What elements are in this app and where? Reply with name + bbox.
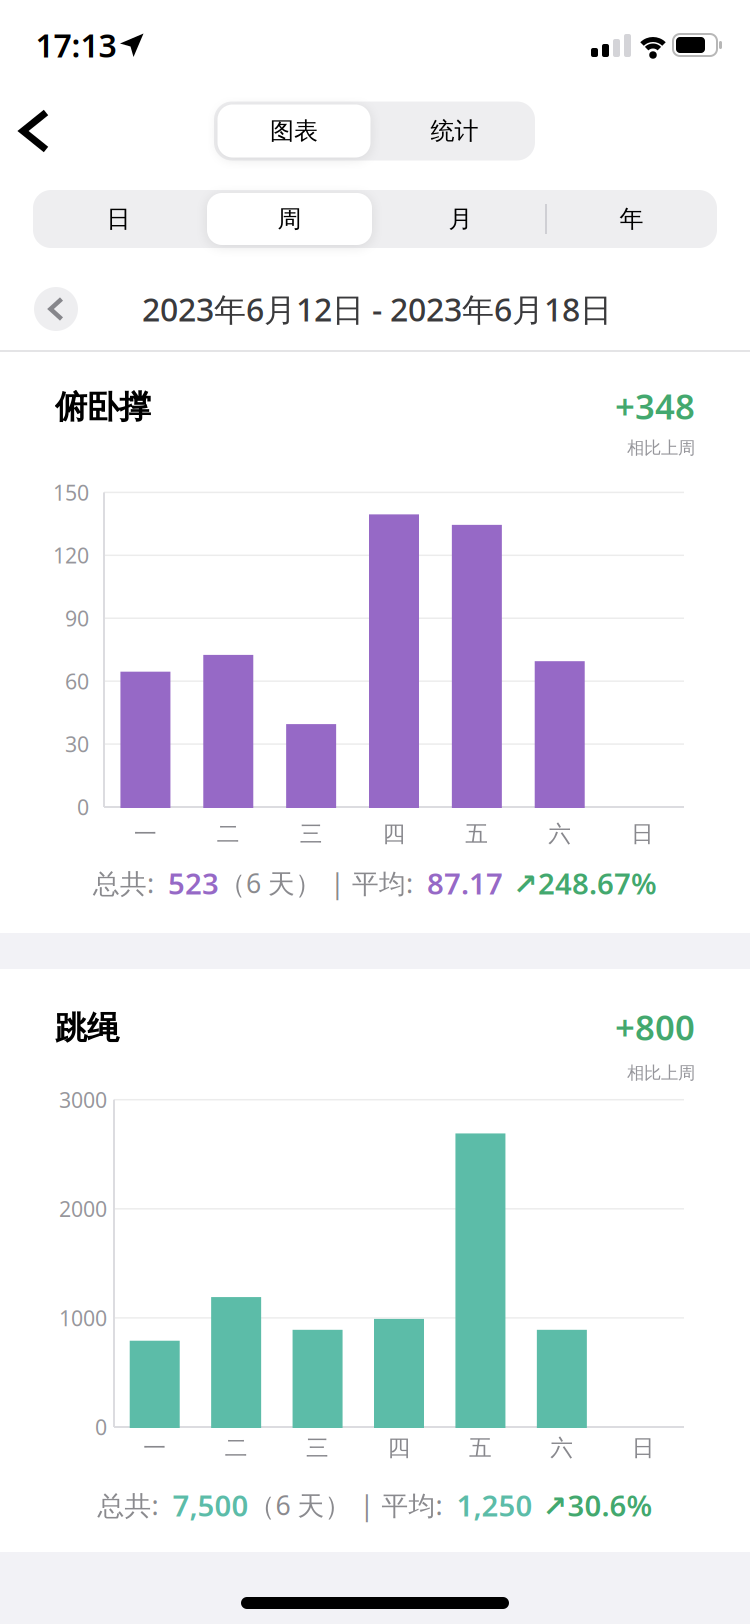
staticText: 总共: bbox=[97, 1487, 172, 1523]
staticText: 二 bbox=[225, 1434, 248, 1462]
button[interactable]: 统计 bbox=[374, 101, 534, 160]
staticText: ↗248.67% bbox=[503, 863, 657, 902]
staticText: （6 天） bbox=[219, 865, 330, 901]
staticText: 日 bbox=[106, 204, 130, 234]
staticText: 0 bbox=[77, 793, 89, 821]
staticText: 一 bbox=[134, 820, 157, 848]
staticText: 俯卧撑 bbox=[55, 387, 151, 427]
staticText: 2000 bbox=[59, 1195, 107, 1223]
staticText: 年 bbox=[619, 204, 643, 234]
staticText: 四 bbox=[387, 1434, 410, 1462]
staticText: | 平均: bbox=[359, 1487, 456, 1523]
staticText: 五 bbox=[465, 820, 488, 848]
staticText: 日 bbox=[631, 820, 654, 848]
staticText: 五 bbox=[469, 1434, 492, 1462]
staticText: 87.17 bbox=[427, 863, 503, 902]
staticText: 3000 bbox=[59, 1085, 107, 1114]
staticText: 1,250 bbox=[456, 1485, 532, 1524]
staticText: 三 bbox=[306, 1434, 329, 1462]
staticText: 三 bbox=[300, 820, 323, 848]
staticText: 日 bbox=[632, 1434, 655, 1462]
staticText: 六 bbox=[548, 820, 571, 848]
staticText: 相比上周 bbox=[627, 1062, 695, 1084]
staticText: 跳绳 bbox=[55, 1008, 119, 1048]
staticText: 30 bbox=[65, 730, 89, 758]
staticText: 月 bbox=[448, 204, 472, 234]
staticText: 四 bbox=[382, 820, 405, 848]
button[interactable]: 年 bbox=[546, 190, 717, 248]
staticText: 相比上周 bbox=[627, 437, 695, 459]
button[interactable]: 图表 bbox=[214, 101, 374, 160]
staticText: 90 bbox=[65, 604, 89, 632]
button[interactable]: 周 bbox=[204, 190, 375, 248]
staticText: 1000 bbox=[59, 1304, 107, 1332]
button[interactable]: 日 bbox=[33, 190, 204, 248]
staticText: 7,500 bbox=[172, 1485, 248, 1524]
staticText: 17:13 bbox=[35, 24, 116, 66]
button[interactable]: Previous week bbox=[34, 287, 78, 331]
staticText: 图表 bbox=[270, 116, 318, 146]
staticText: 0 bbox=[95, 1413, 107, 1441]
staticText: 总共: bbox=[93, 865, 168, 901]
staticText: ↗30.6% bbox=[532, 1485, 652, 1524]
staticText: 周 bbox=[277, 204, 301, 234]
staticText: 150 bbox=[53, 478, 89, 506]
staticText: 二 bbox=[217, 820, 240, 848]
staticText: 统计 bbox=[430, 116, 478, 146]
staticText: 523 bbox=[168, 863, 219, 902]
staticText: +800 bbox=[615, 1004, 695, 1050]
staticText: 2023年6月12日 - 2023年6月18日 bbox=[142, 288, 612, 330]
staticText: | 平均: bbox=[330, 865, 427, 901]
button[interactable]: Back bbox=[13, 104, 56, 157]
staticText: 一 bbox=[143, 1434, 166, 1462]
button[interactable]: 月 bbox=[375, 190, 546, 248]
staticText: +348 bbox=[615, 383, 695, 429]
staticText: 120 bbox=[53, 541, 89, 569]
staticText: 60 bbox=[65, 667, 89, 695]
staticText: 六 bbox=[550, 1434, 573, 1462]
staticText: （6 天） bbox=[248, 1487, 359, 1523]
